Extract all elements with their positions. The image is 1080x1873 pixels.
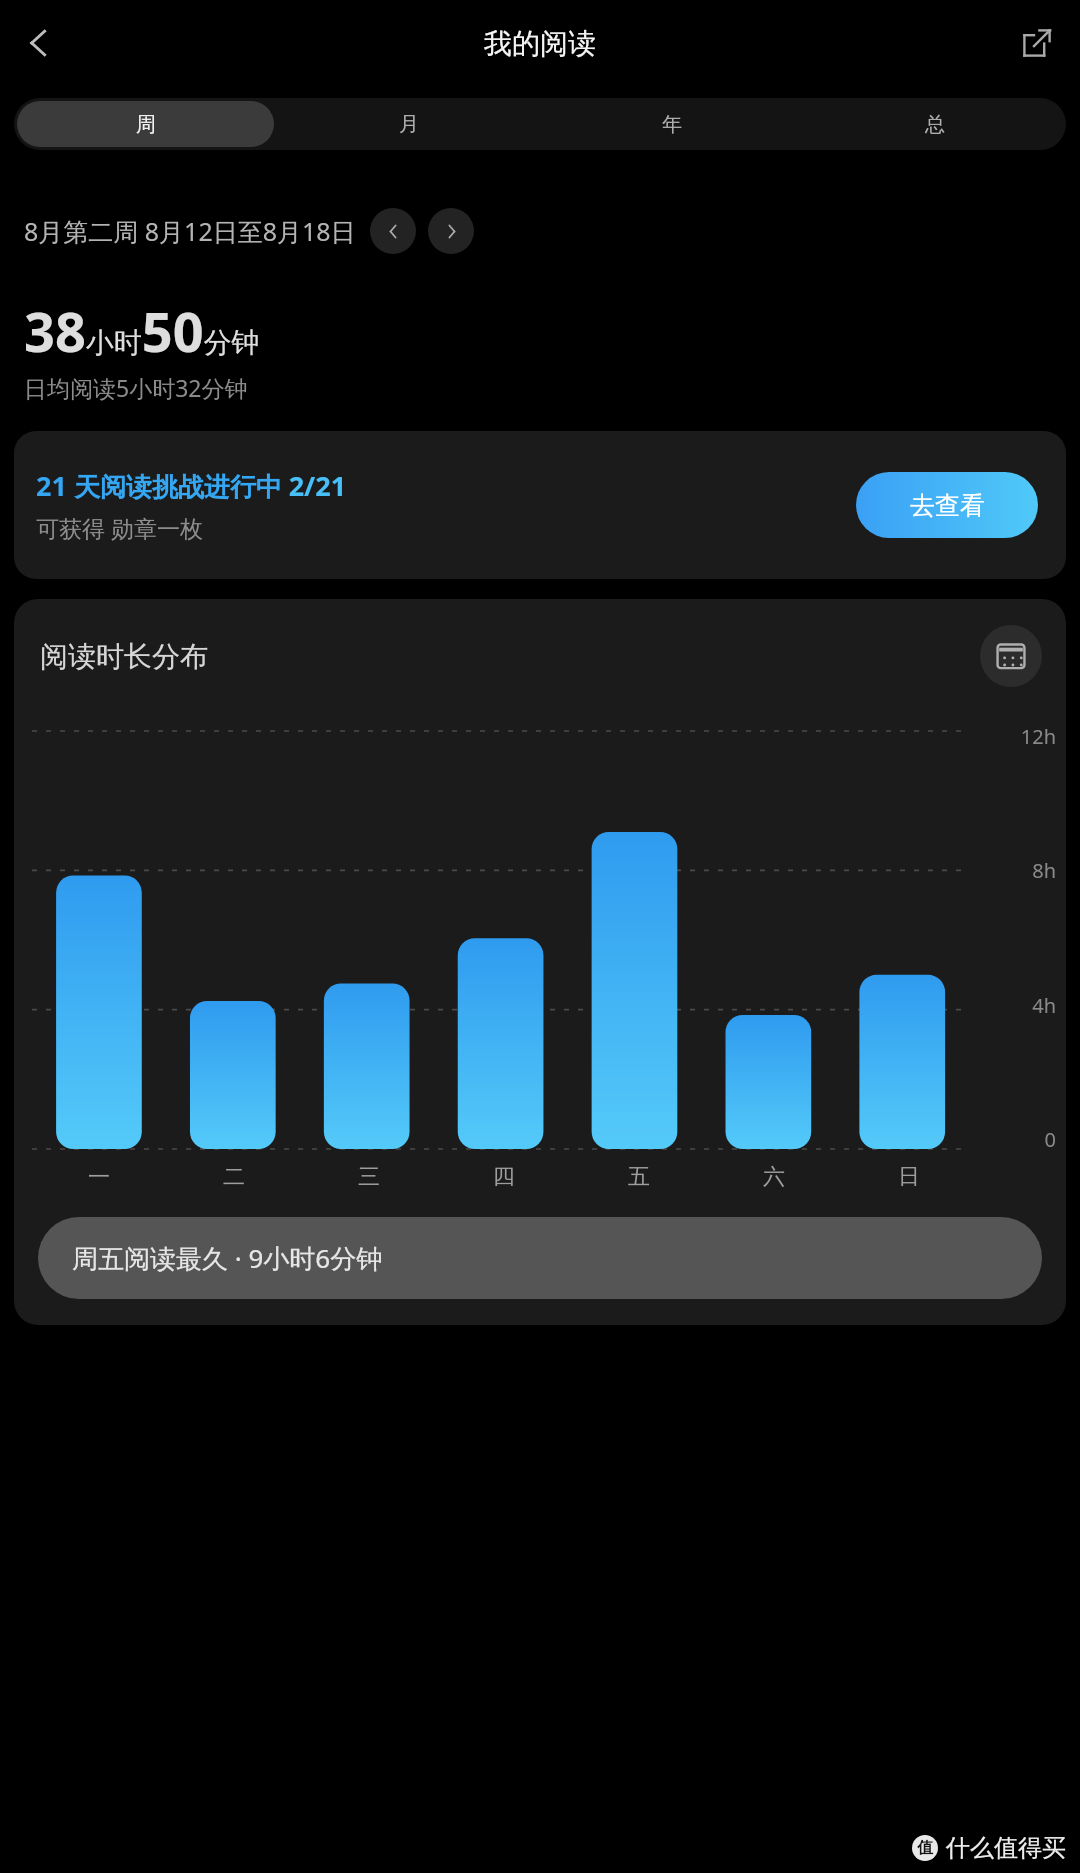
- staticText: 0: [994, 1126, 1056, 1153]
- staticText: 可获得 勋章一枚: [36, 512, 203, 543]
- button[interactable]: Share: [1008, 14, 1066, 72]
- button[interactable]: 21 天阅读挑战进行中 2/21: [14, 431, 1066, 579]
- staticText: 什么值得买: [946, 1833, 1066, 1863]
- button[interactable]: 周五阅读最久 · 9小时6分钟: [38, 1217, 1042, 1299]
- staticText: 年: [662, 112, 682, 137]
- staticText: 六: [763, 1163, 785, 1191]
- staticText: 五: [628, 1163, 650, 1191]
- staticText: 日: [898, 1163, 920, 1191]
- staticText: 四: [493, 1163, 515, 1191]
- staticText: 三: [358, 1163, 380, 1191]
- button[interactable]: 去查看: [856, 472, 1038, 538]
- staticText: 38小时50分钟: [24, 294, 260, 368]
- staticText: 二: [223, 1163, 245, 1191]
- button[interactable]: 月: [280, 101, 537, 147]
- button[interactable]: 年: [543, 101, 800, 147]
- button[interactable]: Previous period: [370, 208, 416, 254]
- staticText: 去查看: [910, 490, 985, 521]
- button[interactable]: Next period: [428, 208, 474, 254]
- staticText: 8月第二周 8月12日至8月18日: [24, 214, 356, 248]
- button[interactable]: Back: [10, 14, 68, 72]
- staticText: 4h: [994, 992, 1056, 1019]
- staticText: 值: [917, 1838, 933, 1858]
- staticText: 周: [136, 112, 156, 137]
- button[interactable]: 周: [17, 101, 274, 147]
- staticText: 总: [925, 112, 945, 137]
- staticText: 周五阅读最久 · 9小时6分钟: [72, 1240, 383, 1276]
- staticText: 月: [399, 112, 419, 137]
- button[interactable]: 总: [806, 101, 1063, 147]
- staticText: 日均阅读5小时32分钟: [24, 372, 248, 403]
- staticText: 一: [88, 1163, 110, 1191]
- staticText: 我的阅读: [484, 26, 596, 61]
- staticText: 阅读时长分布: [40, 639, 208, 674]
- staticText: 12h: [994, 723, 1056, 750]
- button[interactable]: Calendar: [980, 625, 1042, 687]
- staticText: 21 天阅读挑战进行中 2/21: [36, 467, 347, 504]
- staticText: 8h: [994, 857, 1056, 884]
